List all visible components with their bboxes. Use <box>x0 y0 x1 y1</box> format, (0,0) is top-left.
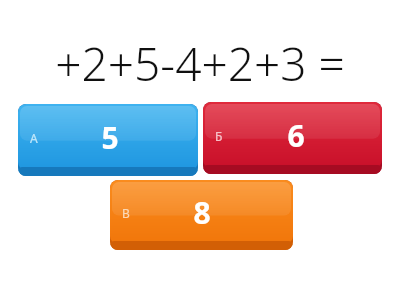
button[interactable]: В <box>110 180 293 250</box>
button[interactable]: Б <box>203 102 382 174</box>
staticText: А <box>30 130 38 146</box>
staticText: 6 <box>287 115 305 156</box>
staticText: В <box>122 205 130 221</box>
staticText: 8 <box>193 192 211 233</box>
other: Answer B: 6 <box>0 0 179 72</box>
staticText: +2+5-4+2+3 = <box>55 32 345 92</box>
staticText: Б <box>215 128 223 144</box>
staticText: 5 <box>101 117 119 158</box>
button[interactable]: А <box>18 104 198 176</box>
other: Answer C: 8 <box>0 0 183 70</box>
other: Answer A: 5 <box>0 0 180 72</box>
